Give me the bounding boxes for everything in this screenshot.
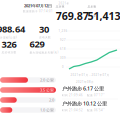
staticText: 309: [60, 56, 66, 60]
button[interactable]: 3.5 公里: [0, 86, 56, 93]
staticText: 988.64: [0, 23, 25, 35]
staticText: 2021年08月: [76, 80, 94, 84]
staticText: 30: [39, 23, 49, 35]
button[interactable]: 户外跑步 10.12 公里: [62, 100, 118, 112]
staticText: 2.0 公里: [40, 77, 54, 83]
staticText: 总运动次数: [1, 51, 16, 54]
staticText: 769.87: [56, 9, 89, 23]
staticText: 3.5 公里: [40, 87, 54, 93]
staticText: 618: [60, 47, 66, 51]
staticText: 户外跑步 10.12 公里: [62, 100, 107, 107]
staticText: 0: [62, 65, 64, 69]
staticText: 运动天数: [39, 36, 51, 39]
button[interactable]: 户外跑步 6.17 公里: [62, 85, 118, 97]
staticText: 927: [60, 38, 66, 42]
button[interactable]: 2.0: [0, 96, 56, 103]
staticText: 数据更新于 07:14:01: [23, 9, 53, 13]
staticText: 2021年: [58, 2, 69, 5]
staticText: 51,413: [87, 9, 120, 23]
staticText: 总距离: [56, 5, 65, 8]
staticText: 累计里程(公里): [0, 36, 17, 39]
staticText: 629: [29, 38, 44, 50]
staticText: 2.0: [49, 97, 54, 103]
button[interactable]: 2.0 公里: [0, 76, 56, 83]
staticText: 2021年07月12日: [24, 3, 52, 8]
staticText: 总步数: [87, 5, 96, 8]
staticText: 1,236: [58, 29, 67, 33]
button[interactable]: 1.0 公里: [0, 106, 56, 113]
staticText: 326: [1, 38, 16, 50]
staticText: 时间 21:04:52 配速 06'54'': [62, 108, 105, 112]
staticText: 最大连续跑步天数(天): [29, 51, 58, 54]
staticText: 1.0 公里: [40, 107, 54, 113]
staticText: 时间 21:09:46 配速 07'17'': [62, 93, 105, 97]
staticText: 户外跑步 6.17 公里: [62, 85, 104, 92]
staticText: 公里: [90, 14, 96, 17]
staticText: 2021年01月 - 2021年07月: [70, 73, 109, 77]
